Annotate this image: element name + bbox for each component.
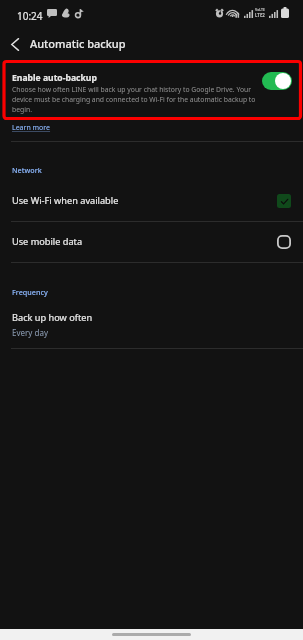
button[interactable]: Enable auto-backup toggle <box>262 72 292 90</box>
staticText: Every day <box>12 327 48 338</box>
staticText: LTE2 <box>255 12 265 18</box>
staticText: Use mobile data <box>12 235 83 248</box>
staticText: Use Wi-Fi when available <box>12 194 119 207</box>
button[interactable]: Checked <box>268 185 300 217</box>
staticText: Enable auto-backup <box>12 72 97 84</box>
staticText: Automatic backup <box>30 36 126 51</box>
staticText: Choose how often LINE will back up your … <box>12 85 262 114</box>
button[interactable]: Learn more <box>12 123 51 133</box>
staticText: 10:24 <box>17 9 43 23</box>
button[interactable]: Unchecked <box>268 226 300 258</box>
staticText: Frequency <box>12 287 48 297</box>
staticText: VoLTE <box>255 7 265 12</box>
staticText: Back up how often <box>12 311 93 324</box>
button[interactable]: Back <box>0 29 30 59</box>
staticText: Network <box>12 165 42 175</box>
